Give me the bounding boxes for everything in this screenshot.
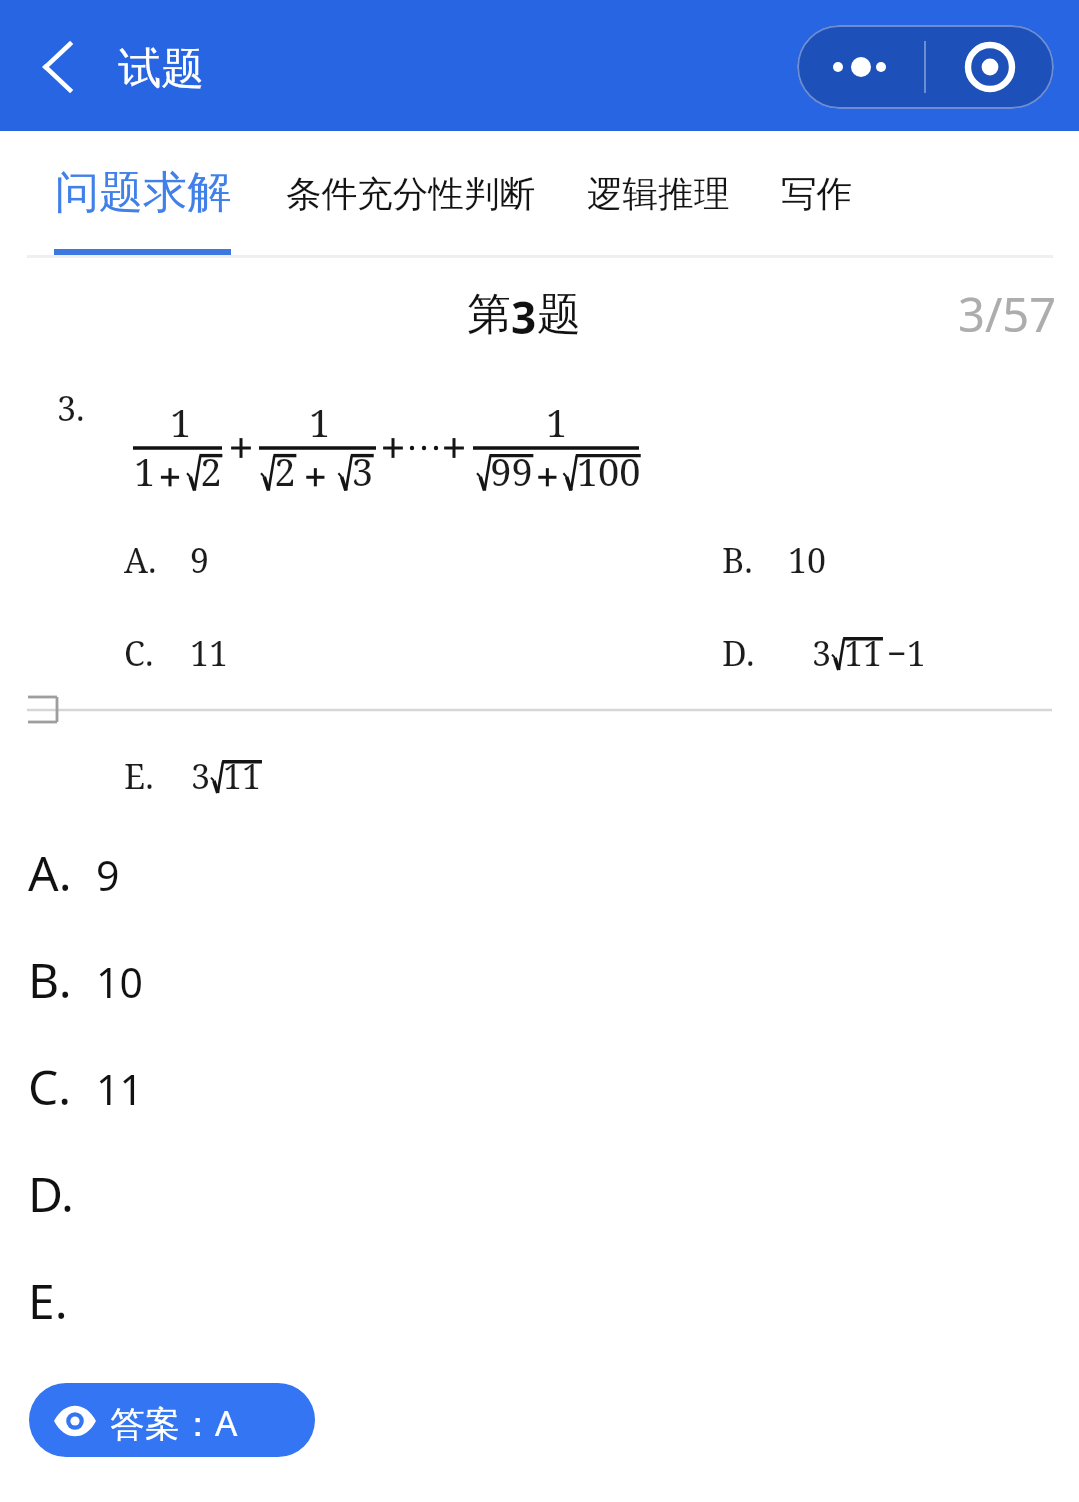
button[interactable]: 问题求解 [45,151,241,234]
staticText: 3 [511,287,537,347]
staticText: 3/57 [958,282,1057,346]
staticText: D. [28,1161,74,1226]
button[interactable]: Back [18,19,96,113]
button[interactable]: D. [0,1145,1079,1241]
button[interactable]: Close mini program [926,25,1054,109]
button[interactable]: 逻辑推理 [577,158,740,231]
button[interactable]: A. [0,824,1079,920]
button[interactable]: More options [797,25,924,109]
staticText: 问题求解 [55,165,231,220]
button[interactable]: 条件充分性判断 [276,158,546,231]
staticText: 11 [96,1061,143,1117]
button[interactable]: 写作 [771,158,863,231]
staticText: 第 [467,287,511,342]
staticText: 10 [96,954,143,1010]
staticText: 试题 [118,42,204,96]
staticText: 答案：A [110,1399,238,1447]
button[interactable]: Question image [0,382,1079,822]
staticText: A. [28,840,72,905]
staticText: 题 [537,287,581,342]
staticText: 写作 [781,172,853,217]
staticText: 条件充分性判断 [286,172,536,217]
button[interactable]: B. [0,931,1079,1027]
button[interactable]: C. [0,1038,1079,1134]
staticText: 9 [96,847,120,903]
staticText: B. [28,947,72,1012]
button[interactable]: 答案：A [29,1383,315,1457]
staticText: 逻辑推理 [587,172,730,217]
staticText: E. [28,1268,68,1333]
staticText: C. [28,1054,72,1119]
button[interactable]: E. [0,1252,1079,1348]
